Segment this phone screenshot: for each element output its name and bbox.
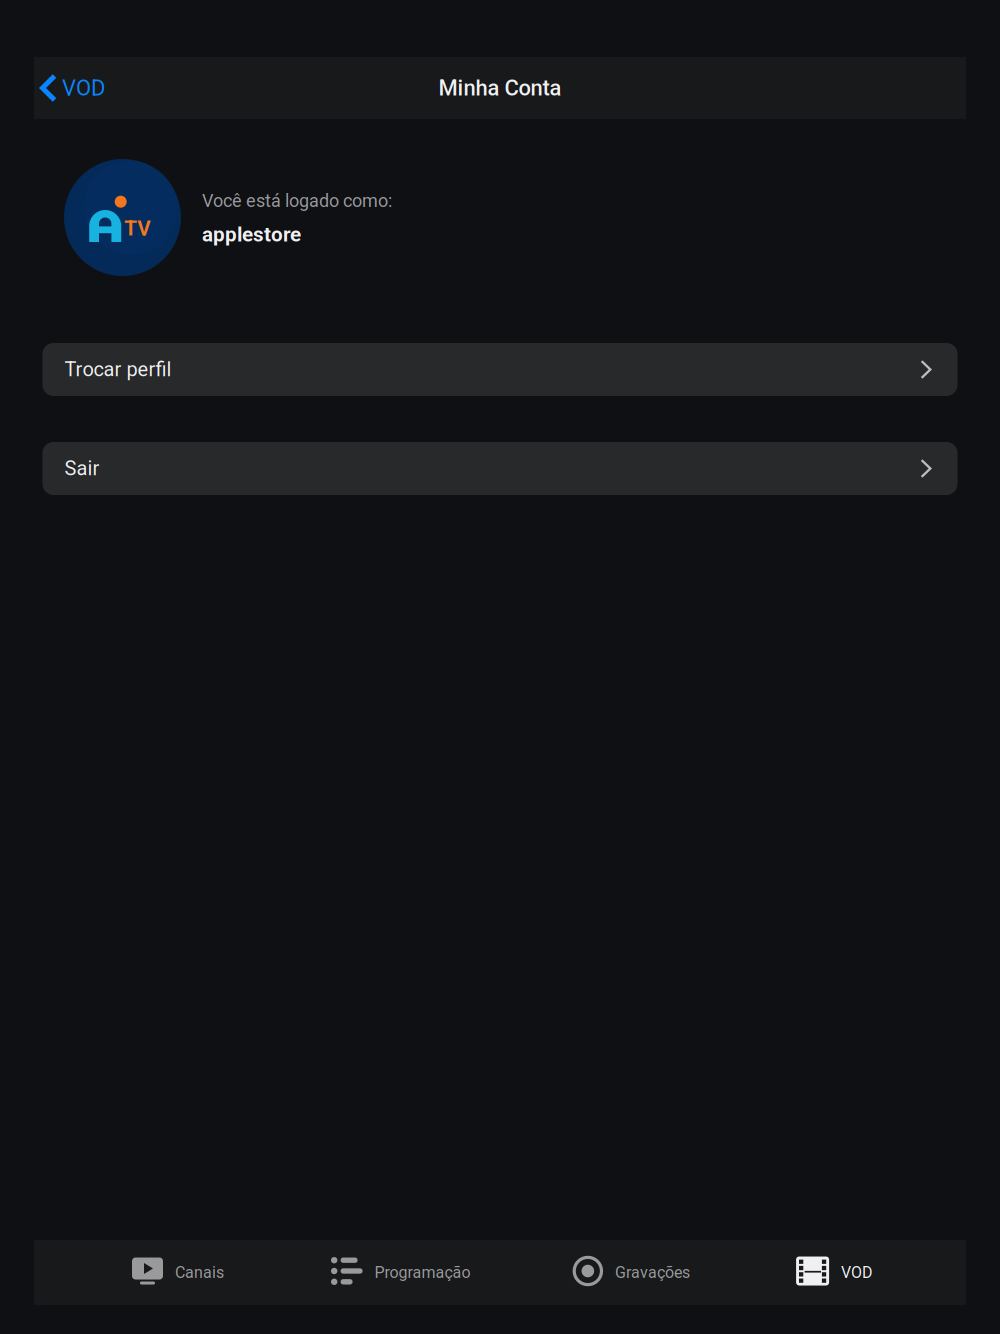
staticText: TV [124, 216, 151, 241]
staticText: Gravações [615, 1263, 690, 1282]
button[interactable]: Gravações [573, 1240, 690, 1305]
button[interactable]: VOD [796, 1240, 873, 1305]
button[interactable]: Trocar perfil [42, 343, 957, 396]
staticText: VOD [841, 1263, 873, 1282]
staticText: applestore [202, 222, 301, 247]
staticText: Você está logado como: [202, 190, 392, 211]
button[interactable]: VOD [34, 57, 115, 119]
staticText: Canais [175, 1263, 224, 1282]
button[interactable]: Canais [132, 1240, 224, 1305]
staticText: Trocar perfil [64, 358, 171, 381]
staticText: Minha Conta [438, 75, 561, 101]
staticText: Programação [375, 1263, 471, 1282]
button[interactable]: Programação [331, 1240, 471, 1305]
staticText: VOD [62, 75, 105, 101]
staticText: Sair [64, 457, 99, 480]
button[interactable]: Sair [42, 442, 957, 495]
